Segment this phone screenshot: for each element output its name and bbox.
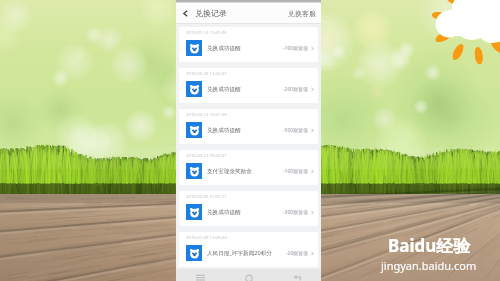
button[interactable]: Back (176, 3, 195, 23)
staticText: 支付宝现金奖励金 (207, 168, 283, 175)
staticText: 2019-04-12 10:21:09 (186, 111, 227, 117)
staticText: 2019-05-28 13:42:07 (186, 70, 227, 76)
staticText: -200财富值 (283, 86, 309, 93)
button[interactable]: 2019-02-05 21:02:11 (179, 191, 318, 226)
staticText: 人民日报_环宇新闻20积分 (207, 249, 286, 257)
staticText: 2019-01-09 12:09:44 (186, 234, 227, 240)
staticText: 兑换成功提醒 (207, 127, 283, 134)
staticText: -300财富值 (283, 209, 309, 216)
staticText: -20财富值 (286, 250, 309, 257)
button[interactable]: Home (235, 269, 263, 281)
button[interactable]: 兑换客服 (284, 6, 321, 21)
staticText: jingyan.baidu.com (381, 258, 477, 273)
staticText: -100财富值 (283, 168, 309, 175)
button[interactable]: 2019-01-09 12:09:44 (179, 232, 318, 267)
button[interactable]: Back (283, 269, 311, 281)
button[interactable]: 2019-07-14 13:41:06 (179, 27, 318, 62)
staticText: 2019-07-14 13:41:06 (186, 29, 227, 35)
staticText: 兑换成功提醒 (207, 86, 283, 93)
button[interactable]: Menu (186, 269, 214, 281)
staticText: 兑换客服 (288, 9, 316, 18)
button[interactable]: 2019-05-28 13:42:07 (179, 68, 318, 103)
button[interactable]: 2019-03-17 09:33:21 (179, 150, 318, 185)
button[interactable]: 2019-04-12 10:21:09 (179, 109, 318, 144)
staticText: 兑换记录 (195, 8, 227, 18)
staticText: -500财富值 (283, 127, 309, 134)
staticText: Baidu经验 (388, 234, 471, 257)
staticText: 2019-03-17 09:33:21 (186, 152, 227, 158)
staticText: 兑换成功提醒 (207, 209, 283, 216)
staticText: 2019-02-05 21:02:11 (186, 193, 227, 199)
staticText: 兑换成功提醒 (207, 45, 283, 52)
staticText: -100财富值 (283, 45, 309, 52)
